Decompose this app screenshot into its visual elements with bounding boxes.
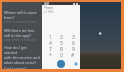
- button[interactable]: Will there be free wifi in the app?: [4, 28, 40, 42]
- button[interactable]: Can I cancel anytime?: [4, 66, 40, 69]
- button[interactable]: 4: [46, 40, 54, 46]
- button[interactable]: 5: [57, 40, 65, 46]
- staticText: *: [49, 52, 52, 58]
- staticText: 7: [49, 46, 52, 52]
- button[interactable]: 6: [69, 40, 77, 46]
- button[interactable]: 1: [46, 34, 54, 40]
- staticText: 6: [72, 40, 75, 46]
- staticText: Can I cancel anytime?: [4, 66, 40, 69]
- staticText: there is no such thing: [4, 20, 37, 24]
- staticText: Phone: [44, 6, 54, 10]
- button[interactable]: #: [69, 52, 77, 58]
- staticText: 1: [49, 34, 52, 40]
- button[interactable]: 7: [46, 46, 54, 52]
- staticText: Will there be free wifi in the app?: [4, 28, 35, 38]
- staticText: +1 555: [44, 10, 54, 14]
- staticText: Where will it come from?: [4, 10, 37, 20]
- button[interactable]: 2: [57, 34, 65, 40]
- staticText: 0: [60, 52, 63, 58]
- staticText: only when connected: [4, 38, 36, 42]
- staticText: 3: [72, 34, 75, 40]
- button[interactable]: Call: [57, 60, 65, 68]
- button[interactable]: 0: [57, 52, 65, 58]
- staticText: 2: [60, 34, 63, 40]
- button[interactable]: 8: [57, 46, 65, 52]
- button[interactable]: 9: [69, 46, 77, 52]
- staticText: #: [71, 52, 75, 58]
- staticText: 9:41: [44, 2, 50, 5]
- button[interactable]: Backspace: [73, 61, 78, 66]
- button[interactable]: Where will it come from?: [4, 10, 40, 24]
- staticText: 4: [49, 40, 52, 46]
- staticText: 8: [60, 46, 63, 52]
- staticText: How do I get started with the service an…: [4, 45, 40, 65]
- button[interactable]: *: [46, 52, 54, 58]
- button[interactable]: 3: [69, 34, 77, 40]
- staticText: 5: [60, 40, 63, 46]
- button[interactable]: How do I get started with the service an…: [4, 45, 40, 65]
- staticText: 9: [72, 46, 75, 52]
